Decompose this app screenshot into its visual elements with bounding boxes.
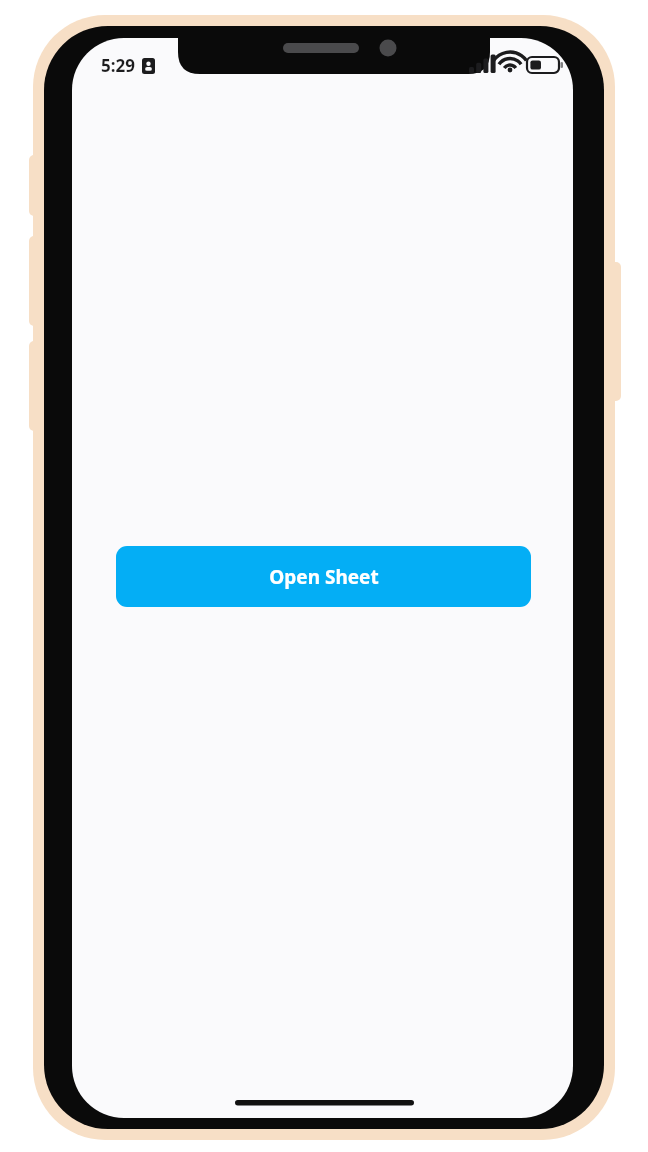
staticText: 5:29 [101, 54, 135, 77]
staticText: Open Sheet [269, 564, 379, 590]
button[interactable]: Open Sheet [116, 546, 531, 607]
